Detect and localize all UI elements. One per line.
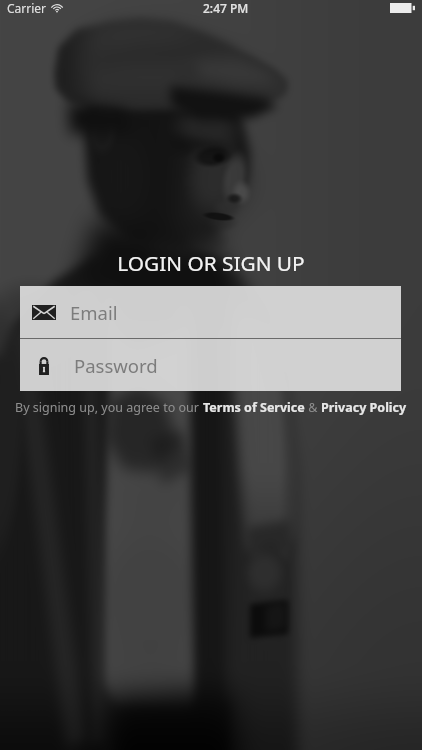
- button[interactable]: Password: [20, 339, 401, 391]
- staticText: LOGIN OR SIGN UP: [0, 249, 422, 277]
- staticText: &: [305, 399, 321, 416]
- button[interactable]: Email: [20, 286, 401, 338]
- other: Email: [32, 305, 56, 320]
- staticText: Email: [70, 300, 118, 325]
- staticText: Carrier: [7, 0, 47, 16]
- staticText: By signing up, you agree to our: [15, 399, 203, 416]
- button[interactable]: Privacy Policy: [321, 399, 407, 416]
- other: Password: [36, 356, 52, 375]
- staticText: 2:47 PM: [203, 0, 249, 16]
- button[interactable]: Terms of Service: [203, 399, 305, 416]
- staticText: Password: [74, 353, 158, 378]
